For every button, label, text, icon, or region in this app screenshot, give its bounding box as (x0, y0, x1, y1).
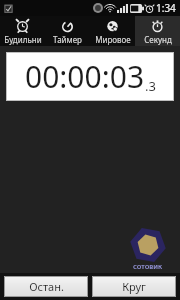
staticText: Мировое (95, 34, 131, 45)
staticText: Остан. (29, 279, 64, 294)
button[interactable]: Остан. (4, 276, 88, 297)
staticText: Будильни (4, 34, 42, 45)
staticText: Круг (122, 279, 146, 294)
button[interactable]: Круг (92, 276, 176, 297)
staticText: Секунд (144, 34, 172, 45)
button[interactable]: Таймер (45, 16, 90, 46)
button[interactable]: Мировое (90, 16, 135, 46)
staticText: 00:00:03 (25, 56, 145, 97)
button[interactable]: Секунд (135, 16, 180, 46)
button[interactable]: Будильни (0, 16, 45, 46)
staticText: 1:34 (156, 1, 176, 15)
staticText: СОТОВИК (133, 263, 163, 271)
staticText: .3 (145, 77, 156, 95)
staticText: Таймер (53, 34, 82, 45)
